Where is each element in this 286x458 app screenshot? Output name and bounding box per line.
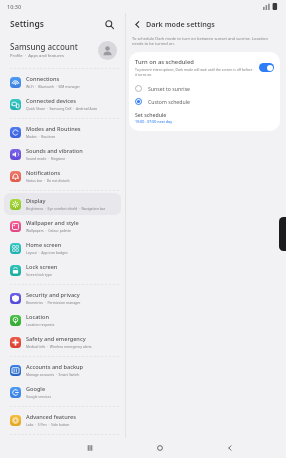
- staticText: To schedule Dark mode to turn on between…: [132, 36, 278, 46]
- staticText: Medical info · Wireless emergency alerts: [26, 344, 92, 349]
- button[interactable]: Safety and emergency: [4, 331, 121, 353]
- staticText: Google: [26, 385, 46, 393]
- staticText: Custom schedule: [148, 98, 190, 105]
- button[interactable]: Security and privacy: [4, 287, 121, 309]
- button[interactable]: Location: [4, 309, 121, 331]
- staticText: Location: [26, 313, 49, 321]
- staticText: Display: [26, 197, 46, 205]
- staticText: Connections: [26, 75, 60, 83]
- staticText: Profile · Apps and features: [10, 53, 64, 59]
- staticText: Settings: [10, 18, 44, 30]
- button[interactable]: Advanced features: [4, 409, 121, 431]
- button[interactable]: Back: [130, 17, 144, 31]
- staticText: Home screen: [26, 241, 62, 249]
- button[interactable]: Sounds and vibration: [4, 143, 121, 165]
- button[interactable]: Turn on as scheduled: [129, 57, 280, 80]
- staticText: Modes · Routines: [26, 134, 56, 139]
- staticText: Google services: [26, 394, 52, 399]
- staticText: Advanced features: [26, 413, 76, 421]
- button[interactable]: Turn on as scheduled toggle: [259, 63, 274, 72]
- staticText: Sounds and vibration: [26, 147, 83, 155]
- staticText: Samsung account: [10, 41, 78, 52]
- button[interactable]: Accounts and backup: [4, 359, 121, 381]
- staticText: 10:30: [7, 3, 22, 10]
- button[interactable]: Lock screen: [4, 259, 121, 281]
- button[interactable]: Custom schedule: [129, 95, 280, 108]
- staticText: Sound mode · Ringtone: [26, 156, 66, 161]
- button[interactable]: Wallpaper and style: [4, 215, 121, 237]
- staticText: Dark mode settings: [146, 19, 215, 29]
- button[interactable]: Home screen: [4, 237, 121, 259]
- button[interactable]: Home: [151, 439, 169, 457]
- staticText: Notifications: [26, 169, 61, 177]
- staticText: Wallpapers · Colour palette: [26, 228, 71, 233]
- staticText: Safety and emergency: [26, 335, 86, 343]
- staticText: Layout · App icon badges: [26, 250, 68, 255]
- staticText: To prevent interruptions, Dark mode will…: [135, 67, 255, 77]
- staticText: Status bar · Do not disturb: [26, 178, 70, 183]
- button[interactable]: Back: [221, 439, 239, 457]
- staticText: Biometrics · Permission manager: [26, 300, 81, 305]
- staticText: Wi-Fi · Bluetooth · SIM manager: [26, 84, 80, 89]
- staticText: Accounts and backup: [26, 363, 84, 371]
- staticText: Sunset to sunrise: [148, 85, 191, 92]
- staticText: Turn on as scheduled: [135, 58, 194, 66]
- staticText: Location requests: [26, 322, 55, 327]
- staticText: Brightness · Eye comfort shield · Naviga…: [26, 206, 106, 211]
- staticText: Modes and Routines: [26, 125, 81, 133]
- staticText: Wallpaper and style: [26, 219, 79, 227]
- button[interactable]: Connected devices: [4, 93, 121, 115]
- button[interactable]: Modes and Routines: [4, 121, 121, 143]
- staticText: Lock screen: [26, 263, 58, 271]
- button[interactable]: Display: [4, 193, 121, 215]
- staticText: Security and privacy: [26, 291, 80, 299]
- button[interactable]: Set schedule: [129, 110, 280, 125]
- button[interactable]: Google: [4, 381, 121, 403]
- button[interactable]: Samsung account: [10, 35, 117, 65]
- staticText: Quick Share · Samsung DeX · Android Auto: [26, 106, 98, 111]
- button[interactable]: Sunset to sunrise: [129, 82, 280, 95]
- button[interactable]: Recents: [81, 439, 99, 457]
- staticText: Set schedule: [135, 111, 167, 118]
- staticText: Connected devices: [26, 97, 76, 105]
- staticText: Screen lock type: [26, 272, 52, 277]
- button[interactable]: Search: [101, 16, 117, 32]
- staticText: Labs · S Pen · Side button: [26, 422, 70, 427]
- button[interactable]: Connections: [4, 71, 121, 93]
- staticText: 19:00 - 07:00 next day: [135, 119, 173, 124]
- button[interactable]: Notifications: [4, 165, 121, 187]
- staticText: Manage accounts · Smart Switch: [26, 372, 80, 377]
